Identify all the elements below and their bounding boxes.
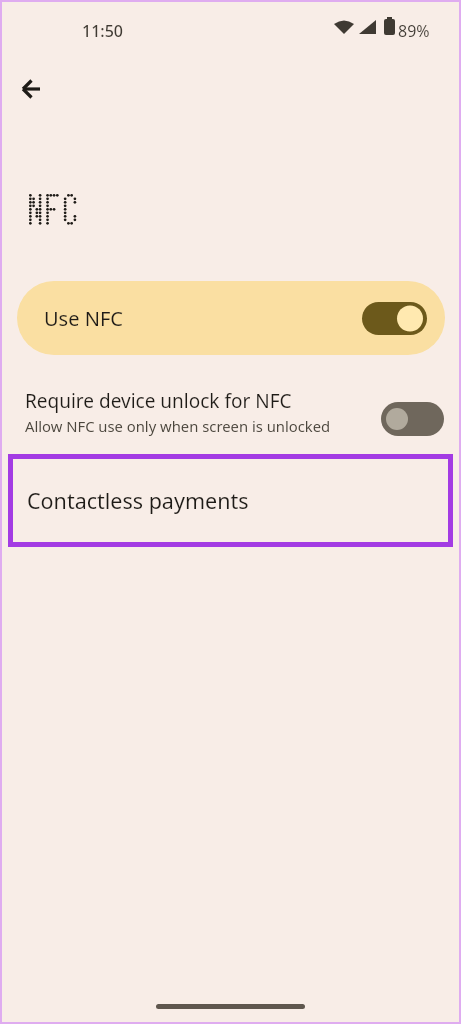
- staticText: Use NFC: [44, 305, 123, 332]
- button[interactable]: [362, 302, 427, 335]
- staticText: 11:50: [82, 20, 123, 42]
- staticText: 89%: [398, 20, 430, 42]
- staticText: Allow NFC use only when screen is unlock…: [25, 416, 331, 436]
- staticText: Contactless payments: [27, 486, 249, 515]
- button[interactable]: Contactless payments: [8, 454, 453, 547]
- staticText: Require device unlock for NFC: [25, 388, 292, 414]
- button[interactable]: Use NFC: [17, 281, 445, 355]
- button[interactable]: [381, 402, 444, 436]
- button[interactable]: [12, 70, 52, 110]
- button[interactable]: Require device unlock for NFC: [0, 375, 461, 447]
